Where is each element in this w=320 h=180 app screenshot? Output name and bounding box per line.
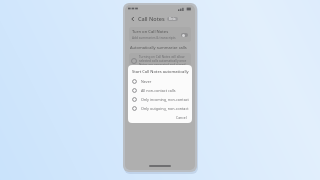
staticText: Notes are generated and stored privately… xyxy=(139,63,189,67)
staticText: All non-contact calls xyxy=(141,88,176,93)
staticText: Start Call Notes automatically xyxy=(132,69,189,74)
button[interactable]: Toggle Call Notes xyxy=(181,33,188,37)
staticText: Turn on Call Notes xyxy=(132,29,169,35)
staticText: Automatically summarize calls xyxy=(130,45,187,50)
staticText: Only incoming, non-contact calls xyxy=(141,97,189,102)
button[interactable]: Back xyxy=(128,14,137,23)
button[interactable]: Turn on Call Notes xyxy=(129,27,191,42)
button[interactable]: Never xyxy=(132,77,189,86)
staticText: Cancel xyxy=(176,115,187,120)
button[interactable]: Only incoming, non-contact calls xyxy=(132,95,189,104)
staticText: selected calls automatically once enable… xyxy=(139,59,189,63)
staticText: Turning on Call Notes will allow you to … xyxy=(139,55,189,59)
staticText: Beta xyxy=(169,17,176,21)
staticText: Only outgoing, non-contact calls xyxy=(141,106,189,111)
button[interactable]: Turning on Call Notes will allow you to … xyxy=(129,53,191,69)
staticText: Call Notes xyxy=(138,15,165,22)
button[interactable]: All non-contact calls xyxy=(132,86,189,95)
button[interactable]: Only outgoing, non-contact calls xyxy=(132,104,189,113)
button[interactable]: Cancel xyxy=(174,114,189,121)
staticText: Never xyxy=(141,79,152,84)
staticText: Add summaries & transcripts xyxy=(132,36,176,40)
